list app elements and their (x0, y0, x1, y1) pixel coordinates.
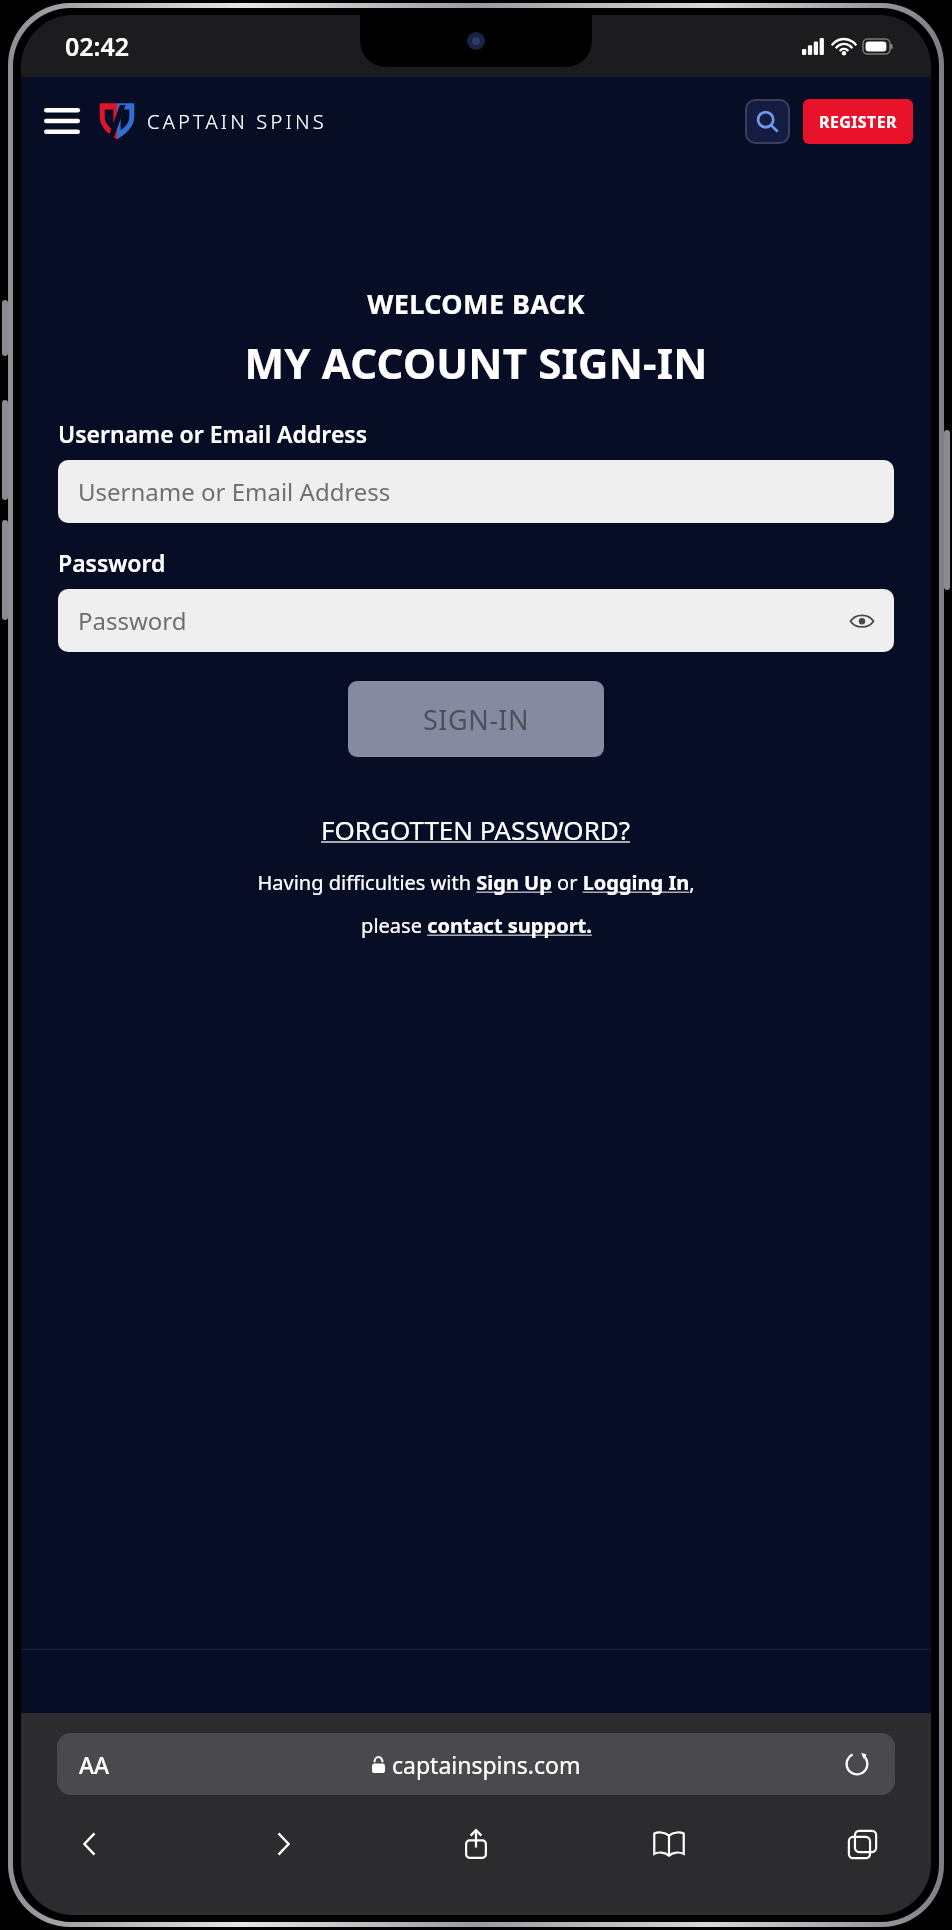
staticText: captainspins.com (392, 1749, 581, 1780)
button[interactable]: please contact support. (361, 912, 592, 939)
staticText: SIGN-IN (423, 701, 530, 738)
button[interactable]: Forward (256, 1817, 310, 1871)
button[interactable]: Show password (842, 601, 882, 641)
staticText: FORGOTTEN PASSWORD? (321, 812, 631, 847)
button[interactable]: Username or Email Address (58, 460, 894, 523)
staticText: Username or Email Address (58, 418, 368, 449)
button[interactable]: Password (58, 589, 894, 652)
button[interactable]: Menu (39, 98, 85, 144)
button[interactable]: SIGN-IN (348, 681, 604, 757)
staticText: Username or Email Address (78, 475, 391, 508)
staticText: Password (58, 547, 166, 578)
staticText: AA (79, 1749, 110, 1780)
button[interactable]: Bookmarks (642, 1817, 696, 1871)
staticText: REGISTER (819, 111, 897, 133)
button[interactable]: Back (63, 1817, 117, 1871)
button[interactable]: FORGOTTEN PASSWORD? (321, 812, 631, 847)
button[interactable]: REGISTER (803, 99, 913, 144)
staticText: 02:42 (65, 29, 130, 63)
button[interactable]: Search (745, 99, 790, 144)
button[interactable]: AA (57, 1733, 895, 1795)
staticText: CAPTAIN SPINS (147, 108, 327, 135)
staticText: Password (78, 604, 187, 637)
staticText: Having difficulties with Sign Up or Logg… (257, 869, 695, 896)
button[interactable]: Share (449, 1817, 503, 1871)
button[interactable]: Tabs (835, 1817, 889, 1871)
staticText: MY ACCOUNT SIGN-IN (244, 334, 708, 391)
button[interactable]: Reload (839, 1746, 875, 1782)
staticText: WELCOME BACK (367, 285, 585, 322)
